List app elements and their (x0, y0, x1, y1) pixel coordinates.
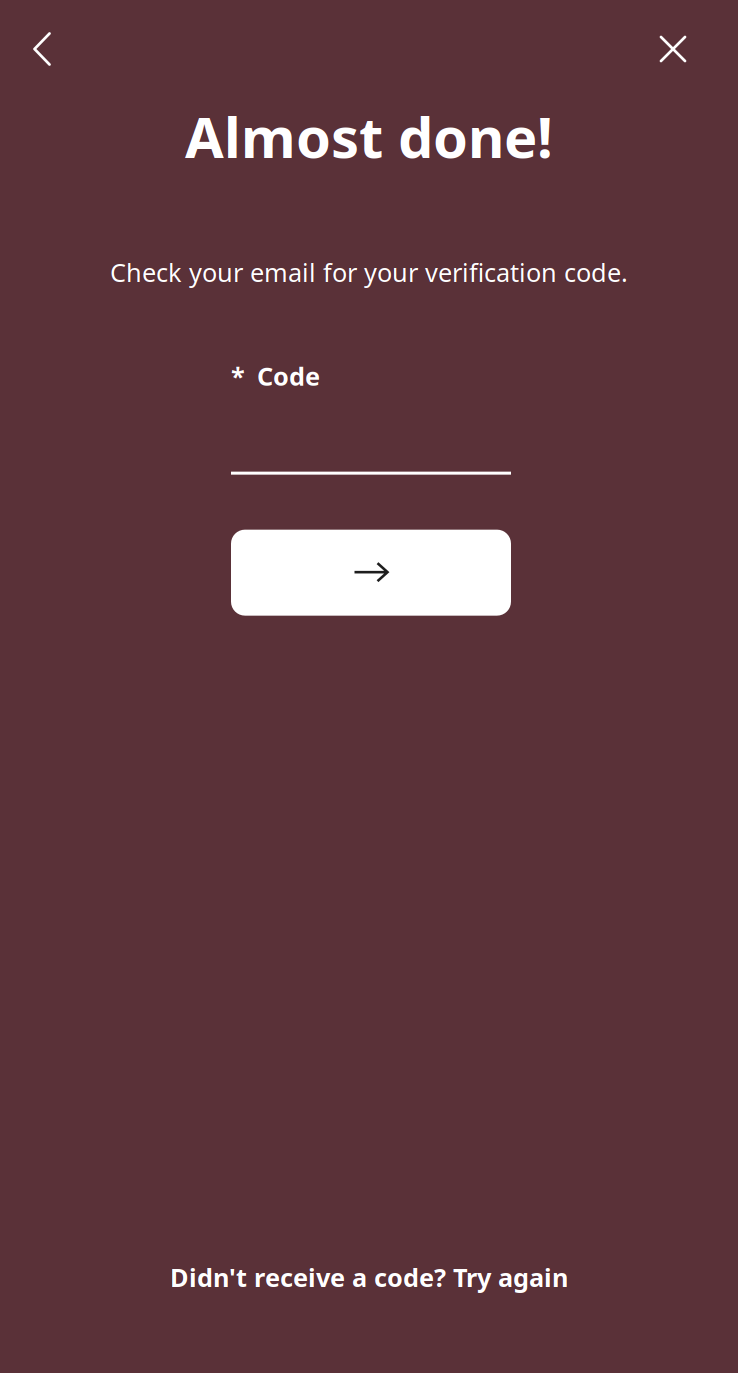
button[interactable]: Close (645, 21, 701, 77)
staticText: Code (257, 359, 320, 393)
staticText: * (231, 359, 245, 393)
staticText: Check your email for your verification c… (110, 255, 628, 289)
button[interactable]: Didn't receive a code? Try again (160, 1252, 578, 1302)
staticText: Almost done! (185, 99, 553, 173)
button[interactable]: Back (14, 21, 70, 77)
staticText: Didn't receive a code? Try again (170, 1260, 568, 1294)
button[interactable]: Code (231, 359, 511, 475)
button[interactable]: Submit (231, 530, 511, 616)
